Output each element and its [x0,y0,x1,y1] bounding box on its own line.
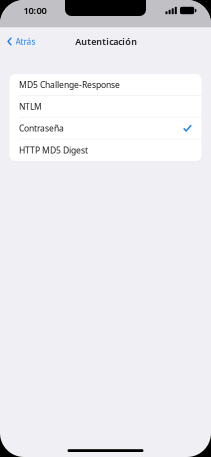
staticText: MD5 Challenge-Response [19,79,120,90]
button[interactable]: Contraseña [9,117,201,139]
staticText: Autenticación [75,35,137,48]
button[interactable]: Atrás [0,29,35,50]
button[interactable]: NTLM [9,96,201,118]
button[interactable]: MD5 Challenge-Response [9,74,201,96]
staticText: NTLM [19,100,42,112]
staticText: Contraseña [19,122,64,134]
staticText: 10:00 [23,4,46,17]
staticText: HTTP MD5 Digest [19,144,88,156]
staticText: Atrás [15,36,35,47]
button[interactable]: HTTP MD5 Digest [9,139,201,161]
